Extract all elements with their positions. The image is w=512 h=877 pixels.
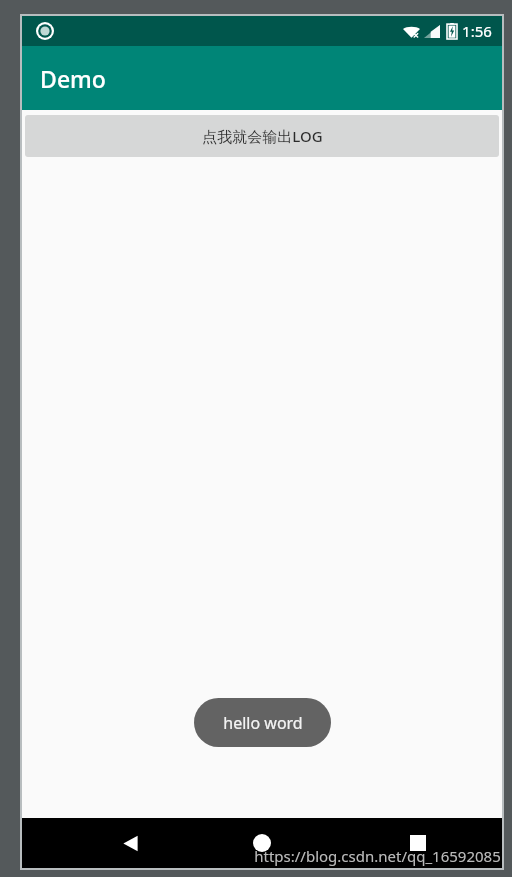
staticText: hello word: [223, 712, 303, 734]
staticText: Demo: [40, 63, 106, 94]
button[interactable]: Home: [240, 821, 284, 865]
button[interactable]: Recent apps: [396, 821, 440, 865]
button[interactable]: Back: [108, 821, 152, 865]
staticText: 1:56: [462, 21, 492, 41]
staticText: https://blog.csdn.net/qq_16592085: [254, 846, 501, 866]
staticText: 点我就会输出LOG: [202, 126, 323, 146]
button[interactable]: 点我就会输出LOG: [25, 115, 499, 157]
